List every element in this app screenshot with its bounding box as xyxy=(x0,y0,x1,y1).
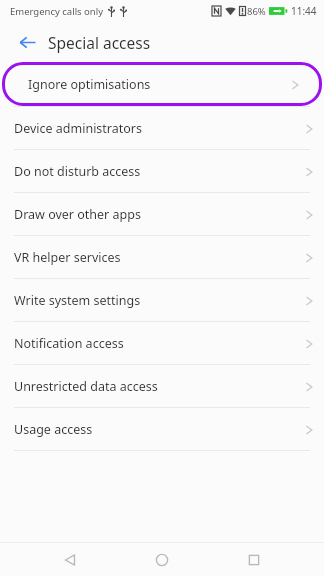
staticText: 86% xyxy=(247,5,266,18)
button[interactable]: Do not disturb access xyxy=(0,150,324,192)
staticText: Write system settings xyxy=(14,292,304,309)
button[interactable]: Draw over other apps xyxy=(0,193,324,235)
staticText: Usage access xyxy=(14,421,304,438)
button[interactable]: Home xyxy=(140,544,184,576)
button[interactable]: Device administrators xyxy=(0,107,324,149)
staticText: VR helper services xyxy=(14,249,304,266)
staticText: Special access xyxy=(48,32,151,53)
staticText: Ignore optimisations xyxy=(28,76,290,93)
button[interactable]: Ignore optimisations xyxy=(2,62,322,106)
staticText: Emergency calls only xyxy=(10,5,104,18)
button[interactable]: Recents xyxy=(232,544,276,576)
button[interactable]: Write system settings xyxy=(0,279,324,321)
button[interactable]: Notification access xyxy=(0,322,324,364)
staticText: 11:44 xyxy=(291,4,317,18)
button[interactable]: Back xyxy=(48,544,92,576)
staticText: Do not disturb access xyxy=(14,163,304,180)
staticText: Device administrators xyxy=(14,120,304,137)
staticText: Draw over other apps xyxy=(14,206,304,223)
staticText: Unrestricted data access xyxy=(14,378,304,395)
button[interactable]: Usage access xyxy=(0,408,324,450)
button[interactable]: Back xyxy=(8,23,46,61)
button[interactable]: Unrestricted data access xyxy=(0,365,324,407)
button[interactable]: VR helper services xyxy=(0,236,324,278)
staticText: Notification access xyxy=(14,335,304,352)
